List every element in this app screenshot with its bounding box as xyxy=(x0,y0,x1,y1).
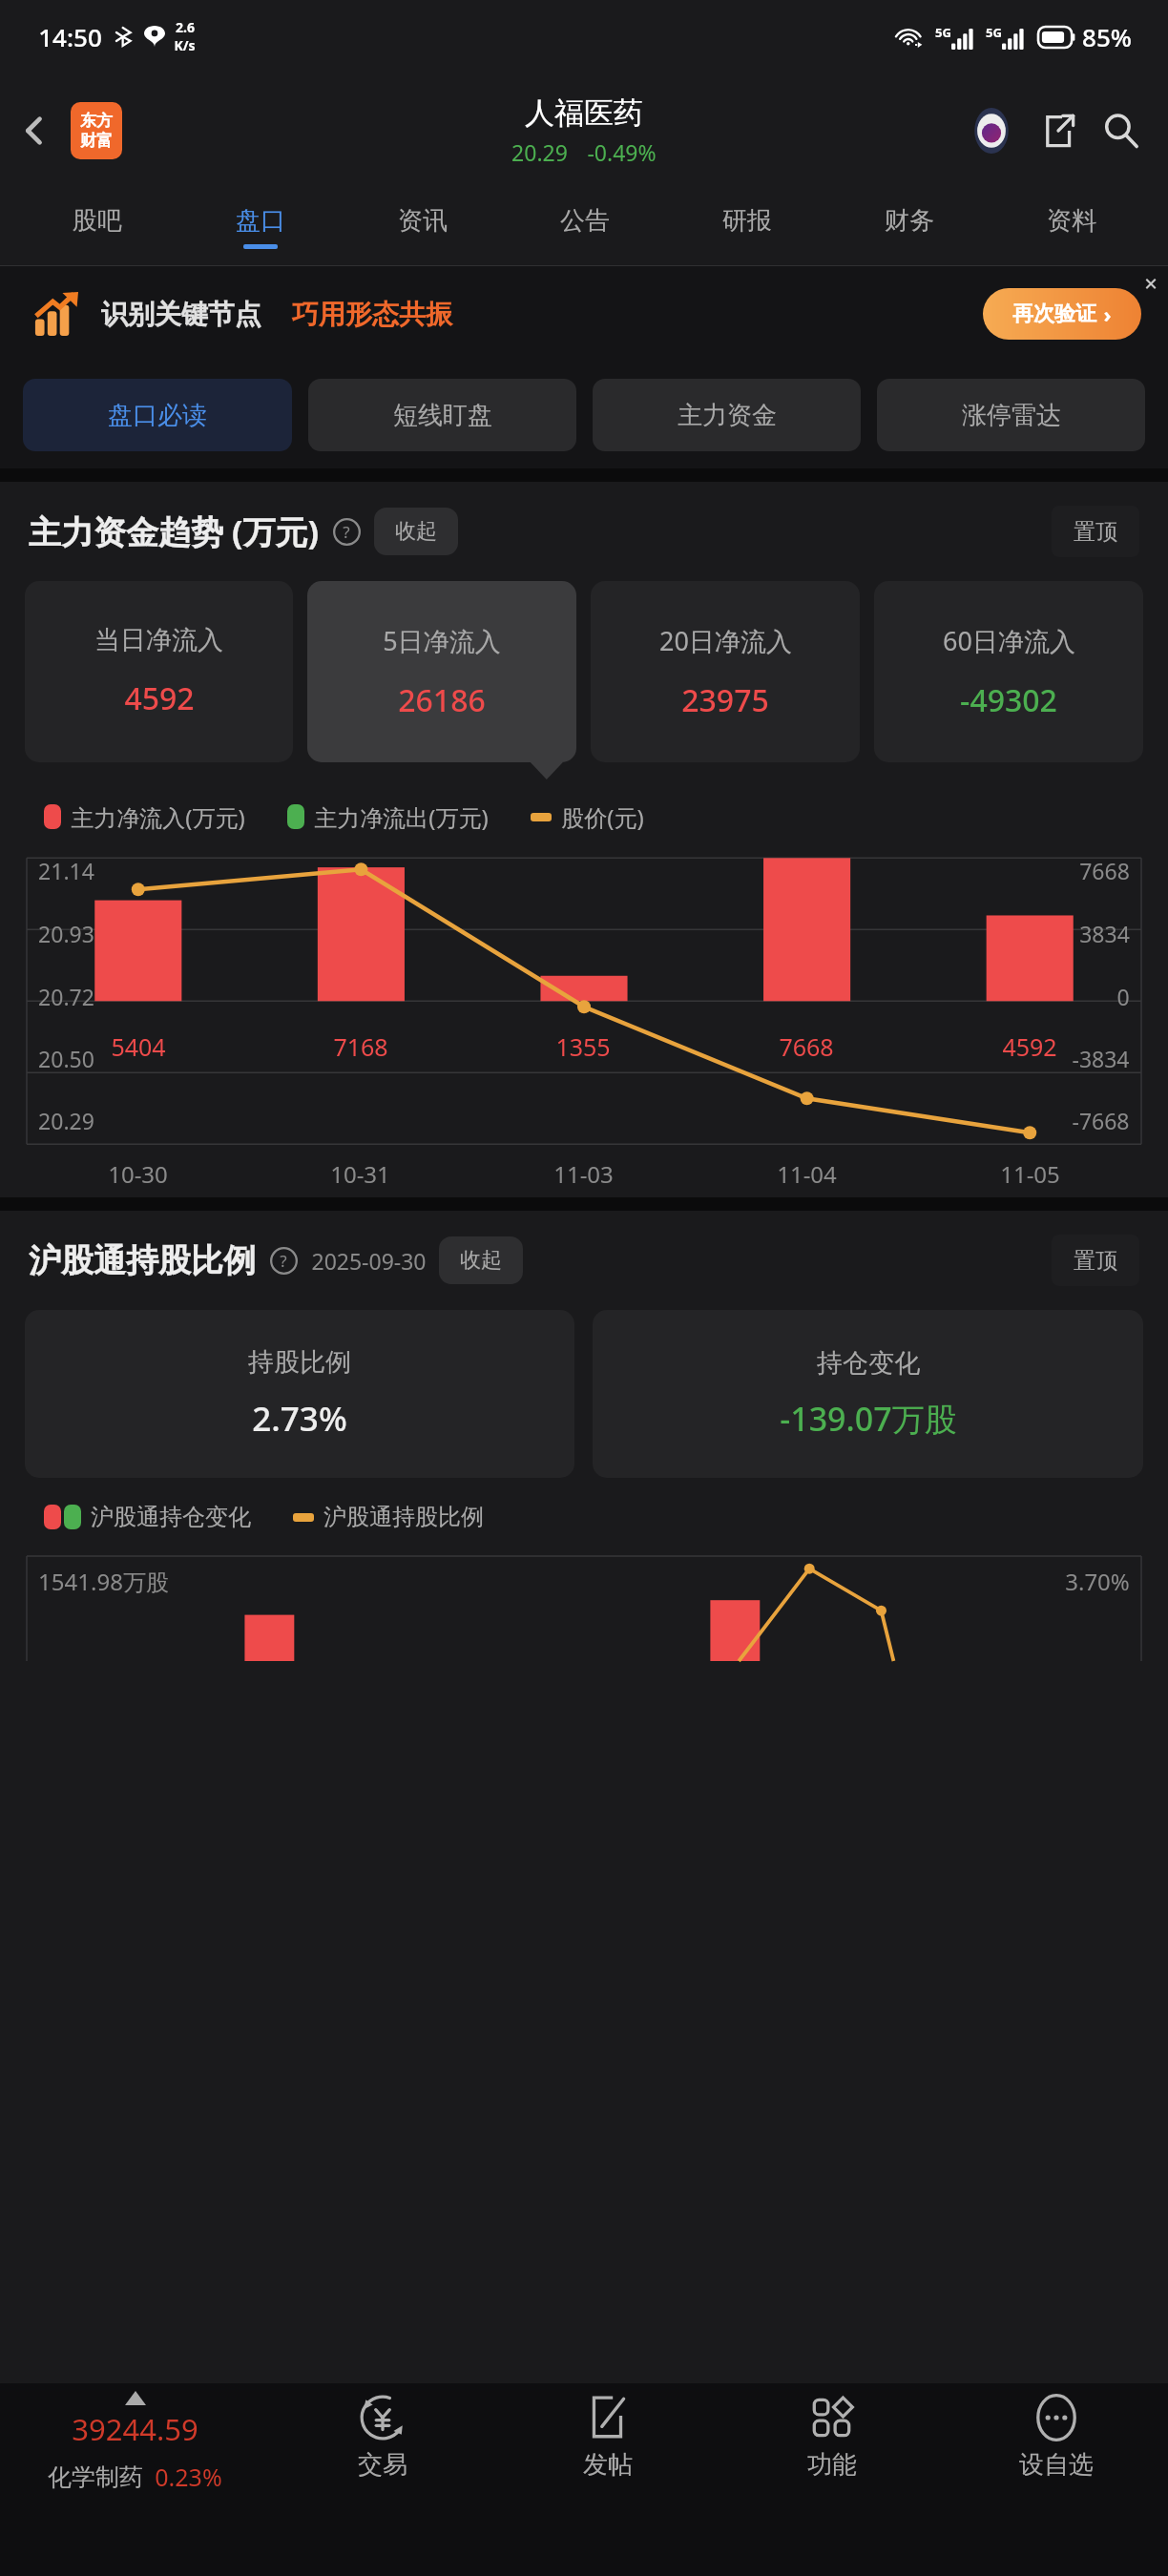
staticText: 0.23% xyxy=(155,2461,222,2493)
staticText: 主力净流出(万元) xyxy=(314,801,489,833)
button[interactable]: 研报 xyxy=(666,189,828,265)
button[interactable]: 盘口必读 xyxy=(23,379,292,451)
button[interactable]: 持仓变化 xyxy=(593,1310,1143,1478)
staticText: 23975 xyxy=(681,679,769,721)
staticText: 11-05 xyxy=(1000,1158,1060,1190)
staticText: 20.72 xyxy=(38,982,94,1011)
staticText: 主力资金 xyxy=(678,400,777,431)
staticText: 收起 xyxy=(395,518,437,545)
button[interactable]: 股吧 xyxy=(15,189,178,265)
button[interactable]: 东方 xyxy=(71,102,122,159)
staticText: 20日净流入 xyxy=(659,623,792,658)
staticText: 设自选 xyxy=(1019,2449,1094,2481)
staticText: 沪股通持仓变化 xyxy=(91,1503,251,1531)
button[interactable]: 交易 xyxy=(270,2383,495,2536)
staticText: 沪股通持股比例 xyxy=(323,1503,484,1531)
button[interactable]: AI assistant xyxy=(964,103,1019,158)
button[interactable]: Back xyxy=(6,102,63,159)
staticText: 39244.59 xyxy=(72,2409,198,2449)
staticText: ? xyxy=(280,1250,287,1272)
staticText: 主力净流入(万元) xyxy=(71,801,245,833)
staticText: 5G xyxy=(986,24,1002,41)
staticText: ? xyxy=(343,521,350,543)
button[interactable]: 资讯 xyxy=(342,189,504,265)
staticText: -3834 xyxy=(1072,1044,1130,1073)
staticText: 2025-09-30 xyxy=(311,1246,427,1276)
staticText: 股价(元) xyxy=(561,801,644,833)
staticText: 21.14 xyxy=(38,856,94,885)
button[interactable]: 财务 xyxy=(828,189,991,265)
staticText: 短线盯盘 xyxy=(393,400,492,431)
staticText: 盘口 xyxy=(236,205,285,237)
button[interactable]: Search xyxy=(1094,103,1149,158)
button[interactable]: 发帖 xyxy=(495,2383,720,2536)
staticText: 26186 xyxy=(398,679,486,721)
staticText: 11-04 xyxy=(777,1158,837,1190)
staticText: 5日净流入 xyxy=(383,623,501,658)
button[interactable]: 收起 xyxy=(374,508,458,555)
staticText: 85% xyxy=(1082,20,1132,53)
staticText: 持股比例 xyxy=(248,1346,351,1379)
button[interactable]: Help xyxy=(331,516,362,547)
staticText: 资料 xyxy=(1047,205,1096,237)
staticText: › xyxy=(1103,300,1112,328)
button[interactable]: 功能 xyxy=(720,2383,944,2536)
staticText: 研报 xyxy=(722,205,772,237)
staticText: 主力资金趋势 (万元) xyxy=(29,509,319,553)
staticText: 20.29 xyxy=(38,1106,94,1135)
button[interactable]: 短线盯盘 xyxy=(308,379,576,451)
staticText: -0.49% xyxy=(587,137,657,167)
staticText: -49302 xyxy=(960,679,1057,721)
button[interactable]: 收起 xyxy=(439,1236,523,1284)
staticText: 置顶 xyxy=(1074,518,1117,546)
staticText: 资讯 xyxy=(398,205,448,237)
staticText: 财务 xyxy=(885,205,934,237)
staticText: 7668 xyxy=(1079,856,1130,885)
staticText: 3.70% xyxy=(1065,1566,1130,1597)
button[interactable]: 5日净流入 xyxy=(307,581,576,762)
staticText: 交易 xyxy=(358,2449,407,2481)
staticText: 盘口必读 xyxy=(108,400,207,431)
button[interactable]: 资料 xyxy=(991,189,1153,265)
staticText: 20.93 xyxy=(38,919,94,948)
button[interactable]: 39244.59 xyxy=(0,2383,270,2536)
button[interactable]: 置顶 xyxy=(1052,506,1139,557)
staticText: 7168 xyxy=(333,1030,388,1063)
button[interactable]: 主力资金 xyxy=(593,379,861,451)
button[interactable]: 盘口 xyxy=(178,189,342,265)
staticText: 当日净流入 xyxy=(94,624,223,656)
staticText: 5404 xyxy=(111,1030,166,1063)
staticText: 涨停雷达 xyxy=(962,400,1061,431)
button[interactable]: Close ad xyxy=(1134,266,1168,301)
staticText: 巧用形态共振 xyxy=(292,298,452,331)
staticText: K/s xyxy=(174,36,196,54)
staticText: 7668 xyxy=(779,1030,834,1063)
staticText: 公告 xyxy=(560,205,610,237)
staticText: 2.73% xyxy=(252,1396,347,1442)
button[interactable]: 20日净流入 xyxy=(591,581,860,762)
staticText: -139.07万股 xyxy=(780,1397,957,1441)
staticText: 11-03 xyxy=(553,1158,614,1190)
button[interactable]: 公告 xyxy=(504,189,666,265)
button[interactable]: 再次验证 xyxy=(983,288,1141,340)
staticText: 4592 xyxy=(1002,1030,1057,1063)
button[interactable]: 持股比例 xyxy=(25,1310,574,1478)
staticText: 财富 xyxy=(80,131,113,151)
button[interactable]: 60日净流入 xyxy=(874,581,1143,762)
button[interactable]: Help xyxy=(268,1245,299,1276)
staticText: 东方 xyxy=(80,111,113,131)
staticText: 识别关键节点 xyxy=(101,298,261,331)
staticText: 沪股通持股比例 xyxy=(29,1240,256,1281)
button[interactable]: 当日净流入 xyxy=(25,581,293,762)
staticText: 5G xyxy=(935,24,951,41)
button[interactable]: 置顶 xyxy=(1052,1235,1139,1286)
staticText: 人福医药 xyxy=(525,94,643,132)
button[interactable]: Share xyxy=(1031,103,1086,158)
staticText: 20.50 xyxy=(38,1044,94,1073)
button[interactable]: 涨停雷达 xyxy=(877,379,1145,451)
button[interactable]: 设自选 xyxy=(944,2383,1168,2536)
staticText: 置顶 xyxy=(1074,1247,1117,1275)
staticText: 化学制药 xyxy=(48,2462,143,2492)
staticText: 10-31 xyxy=(330,1158,390,1190)
staticText: 0 xyxy=(1116,982,1130,1011)
